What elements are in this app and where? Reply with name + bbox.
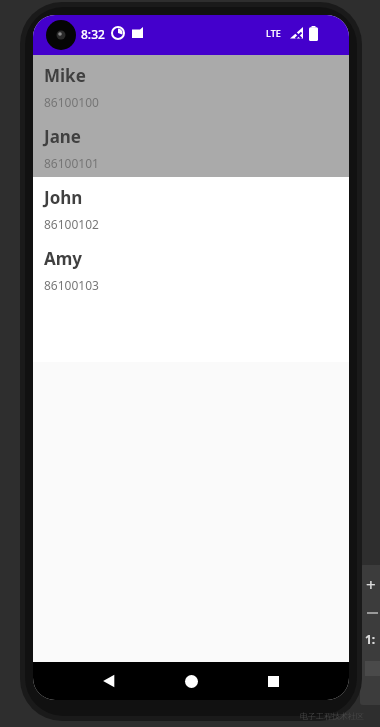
- staticText: John: [44, 186, 83, 209]
- staticText: 86100101: [44, 155, 99, 171]
- staticText: 86100100: [44, 94, 99, 110]
- button[interactable]: Jane: [33, 116, 349, 177]
- staticText: 86100102: [44, 216, 99, 232]
- staticText: LTE: [266, 27, 281, 39]
- staticText: 电子工程技术社区: [300, 711, 364, 721]
- button[interactable]: Back: [79, 662, 139, 700]
- staticText: 1:: [365, 631, 376, 647]
- staticText: Mike: [44, 64, 86, 87]
- button[interactable]: Mike: [33, 55, 349, 116]
- button[interactable]: Amy: [33, 238, 349, 299]
- staticText: Amy: [44, 247, 83, 270]
- button[interactable]: Recent apps: [243, 662, 303, 700]
- staticText: 86100103: [44, 277, 99, 293]
- staticText: 8:32: [81, 26, 105, 42]
- staticText: +: [366, 573, 376, 596]
- button[interactable]: Home: [161, 662, 221, 700]
- button[interactable]: John: [33, 177, 349, 238]
- staticText: Jane: [44, 125, 82, 148]
